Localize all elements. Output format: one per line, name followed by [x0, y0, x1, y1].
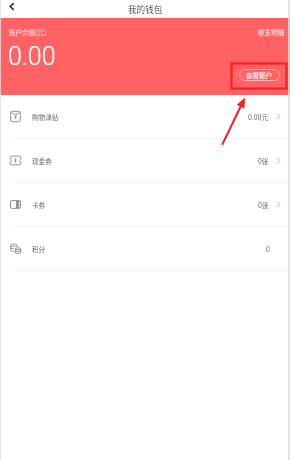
button[interactable]: 现金券	[0, 139, 290, 182]
staticText: 积分	[32, 244, 46, 254]
staticText: 0	[266, 244, 270, 254]
staticText: 0张	[258, 200, 269, 210]
staticText: 0.00元	[248, 112, 269, 122]
staticText: 0.00	[8, 42, 56, 71]
button[interactable]: Back	[4, 0, 20, 16]
button[interactable]: 卡券	[0, 183, 290, 226]
button[interactable]: 查看账户	[239, 69, 280, 81]
staticText: 我的钱包	[128, 3, 163, 15]
button[interactable]: 购物津贴	[0, 95, 290, 138]
staticText: 账户余额(元)	[9, 27, 47, 37]
button[interactable]: 积分	[0, 227, 290, 270]
staticText: 现金券	[32, 156, 52, 166]
staticText: 0张	[258, 156, 269, 166]
staticText: 购物津贴	[32, 112, 59, 122]
button[interactable]: 收支明细	[258, 27, 285, 37]
staticText: 卡券	[32, 200, 46, 210]
staticText: 查看账户	[246, 70, 273, 80]
